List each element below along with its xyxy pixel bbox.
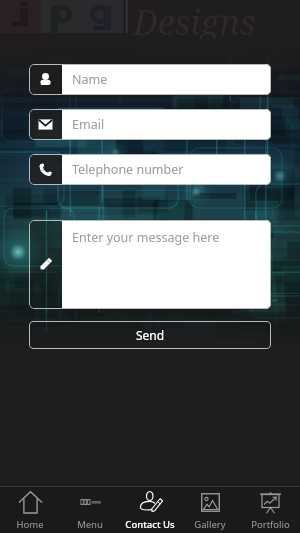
button[interactable]: Email (29, 109, 271, 140)
staticText: Name (72, 71, 108, 88)
staticText: Menu (77, 518, 103, 531)
button[interactable]: Gallery (180, 487, 240, 533)
button[interactable]: Contact Us (120, 487, 180, 533)
button[interactable]: Home (0, 487, 60, 533)
button[interactable]: Enter your message here (29, 220, 271, 309)
staticText: Telephone number (72, 161, 184, 178)
button[interactable]: Menu (60, 487, 120, 533)
button[interactable]: Send (29, 321, 271, 349)
staticText: Email (72, 116, 105, 133)
staticText: Contact Us (125, 518, 175, 531)
button[interactable]: Portfolio (240, 487, 300, 533)
staticText: Gallery (194, 518, 226, 531)
staticText: Send (136, 327, 165, 343)
button[interactable]: Name (29, 64, 271, 95)
button[interactable]: Telephone number (29, 154, 271, 185)
staticText: Designs (133, 0, 256, 39)
staticText: Home (16, 518, 44, 531)
staticText: Portfolio (251, 518, 290, 531)
staticText: Enter your message here (72, 229, 220, 246)
